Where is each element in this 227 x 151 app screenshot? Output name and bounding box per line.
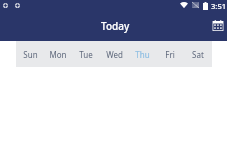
staticText: Sat <box>192 49 204 60</box>
staticText: Today <box>101 19 130 33</box>
button[interactable]: Thu <box>128 41 156 67</box>
staticText: Thu <box>135 49 150 60</box>
button[interactable]: Notification <box>15 3 20 8</box>
button[interactable]: Notification <box>3 3 8 8</box>
button[interactable]: Open calendar <box>206 13 227 37</box>
staticText: Sun <box>23 49 38 60</box>
staticText: Wed <box>106 49 123 60</box>
button[interactable]: Sun <box>16 41 44 67</box>
button[interactable]: Mon <box>44 41 72 67</box>
staticText: Fri <box>165 49 175 60</box>
button[interactable]: Tue <box>72 41 100 67</box>
button[interactable]: Sat <box>184 41 212 67</box>
staticText: Mon <box>49 49 67 60</box>
staticText: 3:51 <box>211 1 227 11</box>
button[interactable]: Wed <box>100 41 128 67</box>
staticText: Tue <box>79 49 93 60</box>
button[interactable]: Fri <box>156 41 184 67</box>
